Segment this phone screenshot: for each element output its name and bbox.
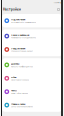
staticText: Сетка • Значки приложений — [11, 106, 33, 108]
button[interactable]: Дисплей — [2, 58, 62, 72]
button[interactable]: Подключения — [2, 14, 62, 27]
staticText: Wi-Fi • Bluetooth • Режим полета — [11, 21, 36, 23]
staticText: Настройки — [3, 8, 21, 11]
staticText: Режим звука • Мелодия звонка — [11, 37, 36, 39]
staticText: Темы • Обои • Иконки — [11, 92, 28, 94]
staticText: Обои главного экрана — [11, 79, 29, 81]
button[interactable]: Обои — [2, 72, 62, 85]
button[interactable]: Главный экран — [2, 98, 62, 112]
staticText: 11:47 ⦁⦁ ▮ — [53, 1, 61, 4]
staticText: Обои — [11, 76, 16, 79]
staticText: Дисплей — [11, 62, 19, 65]
staticText: Уведомления — [11, 47, 25, 50]
staticText: Подключения — [11, 18, 25, 21]
staticText: Главный экран — [11, 102, 25, 105]
button[interactable]: Звуки и вибрация — [2, 29, 62, 43]
staticText: Темы — [11, 89, 17, 92]
button[interactable]: Уведомления — [2, 43, 62, 56]
button[interactable]: Search — [56, 7, 61, 12]
staticText: Яркость • Комфорт для глаз — [11, 65, 33, 68]
button[interactable]: Темы — [2, 85, 62, 98]
staticText: Звуки и вибрация — [11, 33, 29, 36]
staticText: Строка состояния • Запрет — [11, 50, 33, 52]
